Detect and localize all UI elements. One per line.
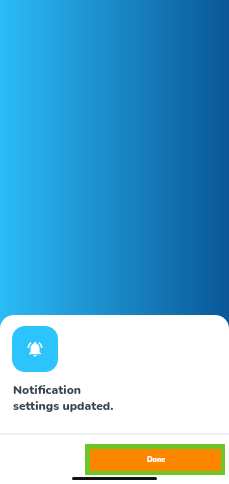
button[interactable]: Done — [90, 449, 221, 471]
staticText: Done — [147, 455, 166, 465]
staticText: Notification settings updated. — [13, 382, 114, 414]
other: Notifications — [12, 326, 58, 372]
